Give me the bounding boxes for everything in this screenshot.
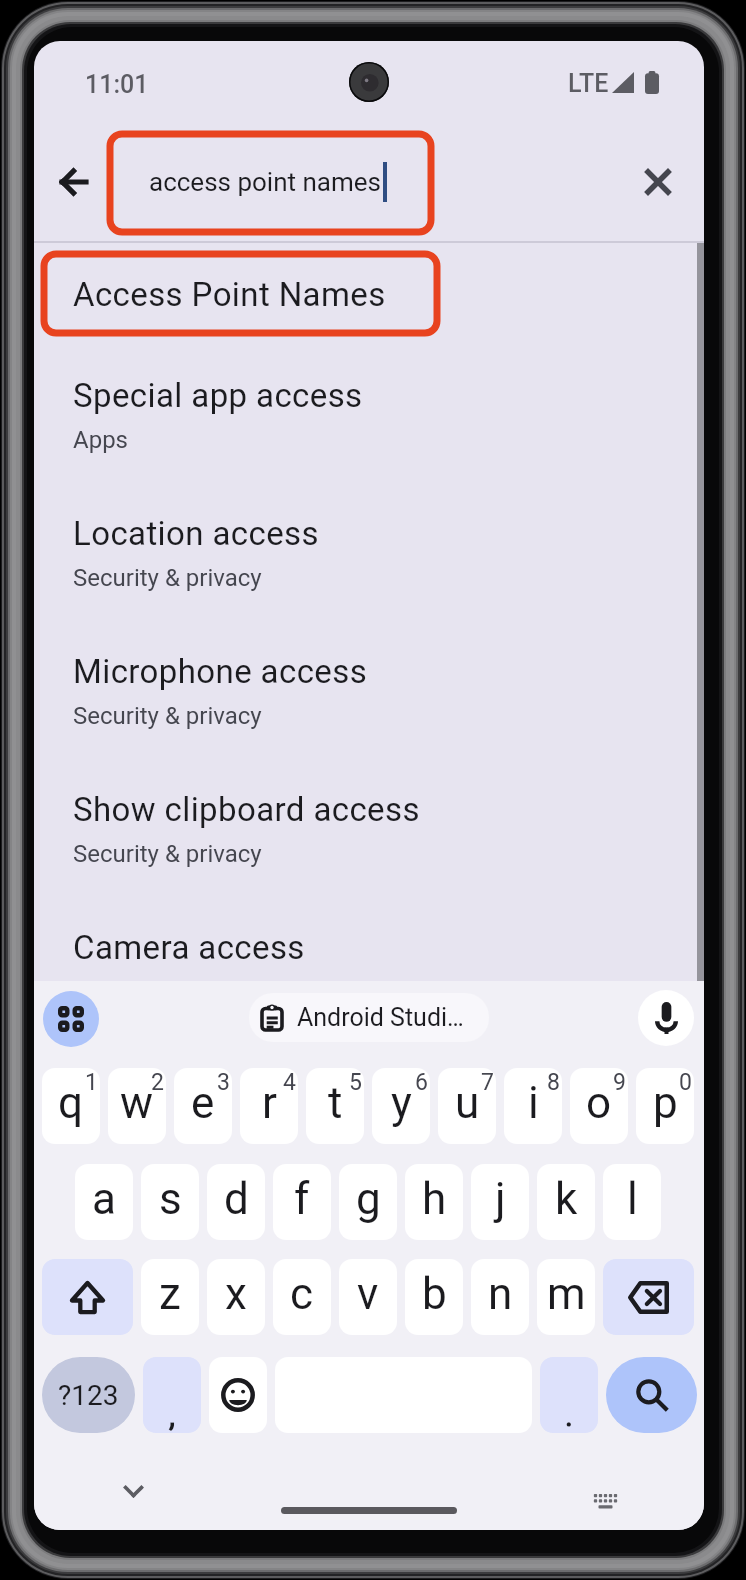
- staticText: Security & privacy: [73, 702, 262, 730]
- button[interactable]: ,: [143, 1357, 201, 1433]
- staticText: e: [191, 1077, 215, 1129]
- button[interactable]: Clear search: [634, 158, 682, 206]
- button[interactable]: Camera access: [34, 928, 704, 981]
- button[interactable]: y: [372, 1068, 430, 1144]
- staticText: 2: [151, 1069, 164, 1096]
- button[interactable]: i: [504, 1068, 562, 1144]
- staticText: s: [159, 1173, 182, 1225]
- button[interactable]: Back: [49, 158, 97, 206]
- button[interactable]: r: [240, 1068, 298, 1144]
- button[interactable]: Emoji: [209, 1357, 267, 1433]
- staticText: d: [224, 1173, 249, 1225]
- button[interactable]: Switch keyboard: [573, 1469, 637, 1530]
- staticText: .: [565, 1398, 573, 1433]
- staticText: y: [391, 1077, 412, 1129]
- button[interactable]: Hide keyboard: [113, 1471, 153, 1511]
- button[interactable]: Shift: [42, 1259, 133, 1335]
- staticText: g: [356, 1173, 381, 1225]
- button[interactable]: Location access: [34, 514, 704, 652]
- staticText: x: [225, 1268, 247, 1320]
- staticText: v: [357, 1268, 379, 1320]
- button[interactable]: j: [471, 1164, 529, 1240]
- staticText: o: [586, 1077, 612, 1129]
- staticText: Access Point Names: [73, 275, 386, 314]
- staticText: k: [555, 1173, 578, 1225]
- staticText: Show clipboard access: [73, 790, 420, 829]
- button[interactable]: k: [537, 1164, 595, 1240]
- staticText: Special app access: [73, 376, 363, 415]
- button[interactable]: access point names: [110, 147, 450, 217]
- button[interactable]: Special app access: [34, 376, 704, 514]
- staticText: p: [653, 1077, 678, 1129]
- button[interactable]: Show clipboard access: [34, 790, 704, 928]
- staticText: i: [528, 1077, 539, 1129]
- button[interactable]: g: [339, 1164, 397, 1240]
- button[interactable]: Android Studi…: [249, 993, 489, 1042]
- button[interactable]: b: [405, 1259, 463, 1335]
- staticText: t: [328, 1077, 343, 1129]
- button[interactable]: Search: [606, 1357, 697, 1433]
- staticText: Security & privacy: [73, 564, 262, 592]
- staticText: a: [92, 1173, 116, 1225]
- staticText: LTE: [568, 69, 609, 98]
- button[interactable]: c: [273, 1259, 331, 1335]
- button[interactable]: a: [75, 1164, 133, 1240]
- button[interactable]: Access Point Names: [34, 275, 704, 376]
- button[interactable]: Backspace: [603, 1259, 694, 1335]
- staticText: c: [290, 1268, 314, 1320]
- staticText: n: [488, 1268, 513, 1320]
- button[interactable]: z: [141, 1259, 199, 1335]
- staticText: 3: [217, 1069, 230, 1096]
- button[interactable]: u: [438, 1068, 496, 1144]
- button[interactable]: o: [570, 1068, 628, 1144]
- button[interactable]: d: [207, 1164, 265, 1240]
- staticText: 4: [283, 1069, 296, 1096]
- staticText: l: [627, 1173, 638, 1225]
- button[interactable]: v: [339, 1259, 397, 1335]
- staticText: q: [58, 1077, 84, 1129]
- button[interactable]: q: [42, 1068, 100, 1144]
- button[interactable]: n: [471, 1259, 529, 1335]
- button[interactable]: ?123: [42, 1357, 135, 1433]
- button[interactable]: t: [306, 1068, 364, 1144]
- staticText: ?123: [58, 1379, 119, 1412]
- button[interactable]: Voice input: [638, 990, 694, 1046]
- staticText: access point names: [149, 167, 382, 197]
- staticText: h: [422, 1173, 447, 1225]
- staticText: Android Studi…: [297, 1003, 464, 1032]
- staticText: Location access: [73, 514, 319, 553]
- staticText: f: [294, 1173, 310, 1225]
- staticText: 5: [349, 1069, 362, 1096]
- staticText: 7: [481, 1069, 494, 1096]
- button[interactable]: h: [405, 1164, 463, 1240]
- staticText: m: [547, 1268, 586, 1320]
- button[interactable]: l: [603, 1164, 661, 1240]
- staticText: ,: [169, 1398, 175, 1433]
- button[interactable]: s: [141, 1164, 199, 1240]
- button[interactable]: .: [540, 1357, 598, 1433]
- staticText: 1: [85, 1069, 98, 1096]
- staticText: 9: [613, 1069, 626, 1096]
- staticText: Microphone access: [73, 652, 368, 691]
- staticText: 0: [679, 1069, 692, 1096]
- staticText: r: [262, 1077, 277, 1129]
- button[interactable]: w: [108, 1068, 166, 1144]
- button[interactable]: p: [636, 1068, 694, 1144]
- button[interactable]: e: [174, 1068, 232, 1144]
- staticText: 6: [415, 1069, 428, 1096]
- button[interactable]: m: [537, 1259, 595, 1335]
- staticText: j: [495, 1173, 506, 1225]
- button[interactable]: Keyboard toolbar: [43, 991, 99, 1047]
- staticText: b: [422, 1268, 447, 1320]
- staticText: Security & privacy: [73, 840, 262, 868]
- staticText: u: [455, 1077, 480, 1129]
- button[interactable]: x: [207, 1259, 265, 1335]
- staticText: 11:01: [85, 70, 149, 99]
- staticText: z: [159, 1268, 181, 1320]
- button[interactable]: f: [273, 1164, 331, 1240]
- button[interactable]: Microphone access: [34, 652, 704, 790]
- staticText: Camera access: [73, 928, 305, 967]
- staticText: 8: [547, 1069, 560, 1096]
